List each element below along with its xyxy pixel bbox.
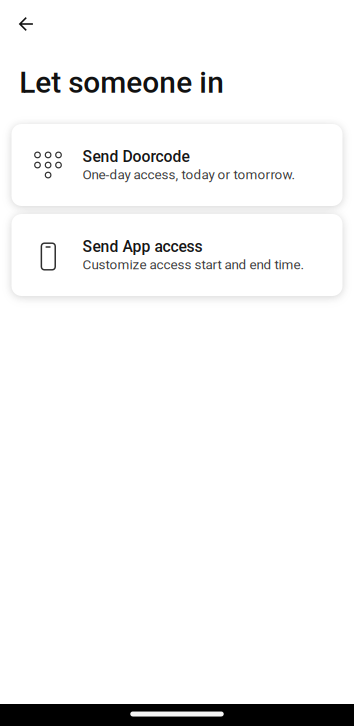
staticText: Send App access [82, 237, 202, 256]
button[interactable]: Back [0, 0, 59, 44]
staticText: Let someone in [19, 65, 224, 100]
staticText: Customize access start and end time. [82, 257, 304, 273]
staticText: Send Doorcode [82, 147, 189, 166]
button[interactable]: Send Doorcode [11, 124, 342, 206]
staticText: One-day access, today or tomorrow. [82, 167, 295, 183]
button[interactable]: Send App access [11, 214, 342, 296]
